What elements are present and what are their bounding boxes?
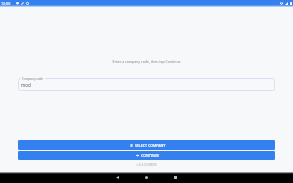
- staticText: 12:00: [1, 1, 11, 6]
- staticText: mod: [21, 82, 31, 88]
- button[interactable]: Back: [103, 172, 132, 183]
- staticText: v 4.3.0 (20800): [0, 163, 293, 167]
- staticText: Enter a company code, then tap Continue: [0, 59, 293, 64]
- staticText: Company code: [22, 77, 44, 81]
- staticText: SELECT COMPANY: [135, 143, 166, 148]
- button[interactable]: mod: [18, 78, 275, 91]
- button[interactable]: SELECT COMPANY: [18, 140, 275, 150]
- staticText: CONTINUE: [141, 153, 160, 158]
- button[interactable]: Recents: [161, 172, 190, 183]
- button[interactable]: CONTINUE: [18, 151, 275, 160]
- button[interactable]: Home: [132, 172, 161, 183]
